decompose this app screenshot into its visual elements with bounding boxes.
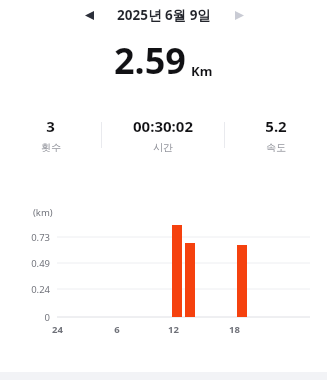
staticText: 18	[229, 323, 240, 336]
staticText: 0	[44, 311, 50, 324]
staticText: 6	[114, 323, 120, 336]
staticText: 24	[52, 323, 63, 336]
staticText: Km	[191, 62, 213, 80]
staticText: 00:30:02	[133, 116, 193, 136]
staticText: (km)	[33, 206, 53, 219]
staticText: 5.2	[265, 116, 287, 136]
button[interactable]: Next day	[225, 1, 253, 29]
staticText: 12	[168, 323, 179, 336]
button[interactable]: 5.2	[225, 114, 327, 156]
button[interactable]: 00:30:02	[102, 114, 224, 156]
staticText: 2.59	[114, 36, 186, 85]
staticText: 시간	[153, 141, 173, 154]
staticText: 0.73	[31, 231, 50, 244]
button[interactable]: 3	[0, 114, 101, 156]
staticText: 속도	[266, 141, 286, 154]
staticText: 0.49	[31, 257, 50, 270]
button[interactable]: Previous day	[75, 1, 103, 29]
staticText: 0.24	[31, 283, 50, 296]
staticText: 2025년 6월 9일	[117, 6, 211, 24]
staticText: 횟수	[41, 141, 61, 154]
staticText: 3	[46, 116, 55, 136]
